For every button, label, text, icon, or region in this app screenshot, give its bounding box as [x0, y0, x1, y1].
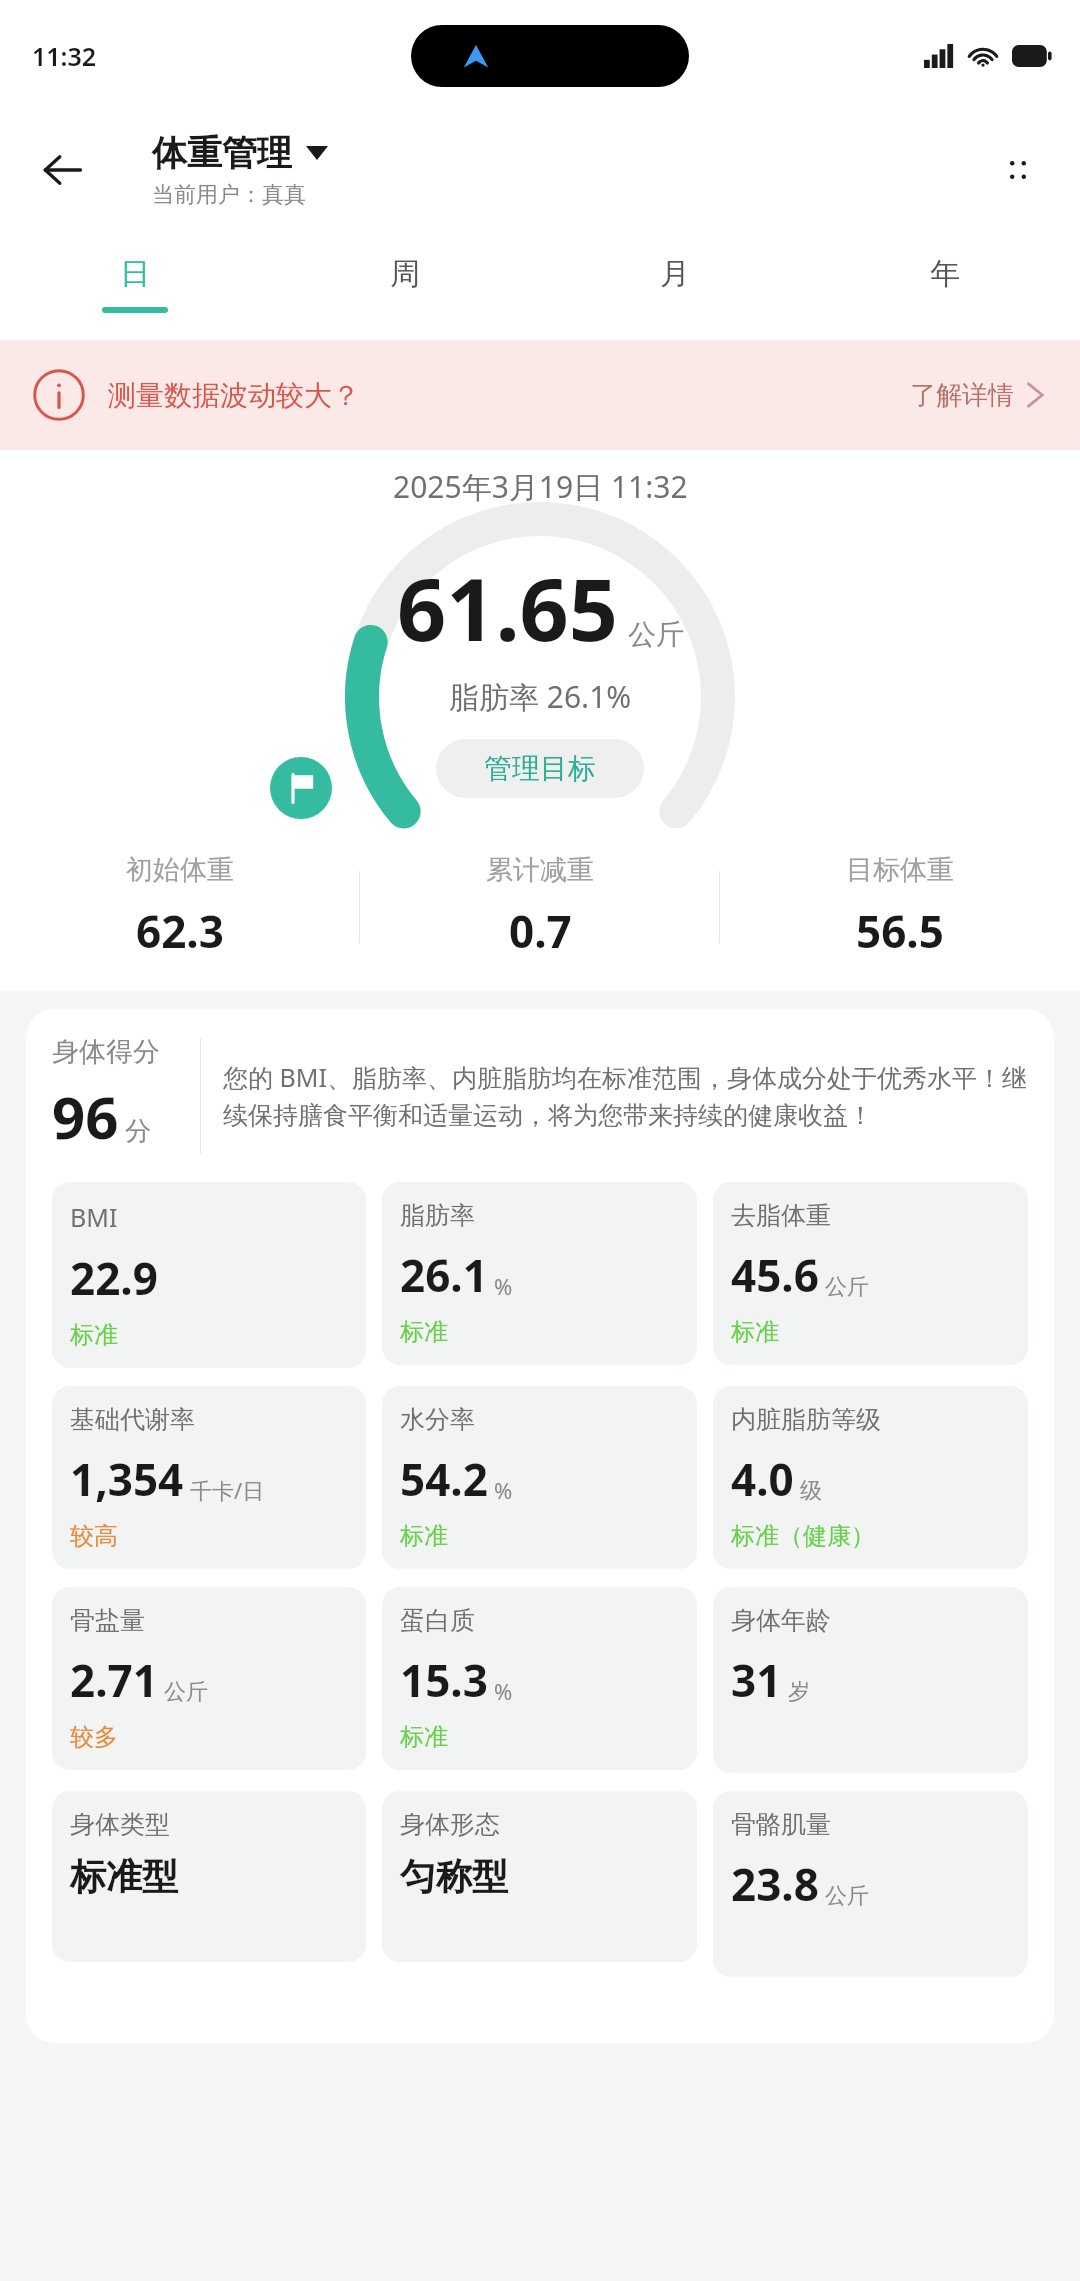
staticText: 初始体重	[126, 853, 234, 887]
button[interactable]: 管理目标	[436, 739, 644, 798]
button[interactable]: 水分率	[382, 1386, 697, 1569]
button[interactable]: 年	[810, 228, 1080, 340]
staticText: 11:32	[32, 39, 97, 73]
staticText: 级	[800, 1477, 822, 1505]
staticText: 较多	[70, 1722, 118, 1752]
staticText: 45.6	[731, 1245, 819, 1305]
staticText: %	[494, 1271, 513, 1301]
staticText: 4.0	[731, 1449, 794, 1509]
staticText: 目标体重	[846, 853, 954, 887]
button[interactable]: 目标体重	[720, 837, 1080, 977]
button[interactable]: BMI	[52, 1182, 366, 1368]
staticText: 2025年3月19日 11:32	[393, 466, 688, 507]
staticText: 标准	[400, 1722, 448, 1752]
staticText: 累计减重	[486, 853, 594, 887]
button[interactable]: 骨骼肌量	[713, 1791, 1028, 1977]
staticText: 较高	[70, 1521, 118, 1551]
staticText: %	[494, 1475, 513, 1505]
staticText: 测量数据波动较大？	[108, 378, 360, 413]
staticText: 周	[390, 255, 420, 293]
staticText: 31	[731, 1650, 782, 1710]
staticText: 基础代谢率	[70, 1404, 195, 1435]
staticText: 标准型	[70, 1854, 178, 1899]
staticText: 标准	[400, 1317, 448, 1347]
staticText: %	[494, 1676, 513, 1706]
staticText: BMI	[70, 1200, 118, 1234]
staticText: 您的 BMI、脂肪率、内脏脂肪均在标准范围，身体成分处于优秀水平！继续保持膳食平…	[223, 1060, 1028, 1132]
staticText: 96	[52, 1077, 119, 1156]
staticText: 年	[930, 255, 960, 293]
staticText: 61.65	[397, 549, 618, 666]
button[interactable]: 月	[540, 228, 810, 340]
staticText: 日	[120, 255, 150, 293]
staticText: 身体年龄	[731, 1605, 831, 1636]
staticText: 23.8	[731, 1854, 819, 1914]
staticText: 脂肪率	[400, 1200, 475, 1231]
staticText: 身体形态	[400, 1809, 500, 1840]
staticText: 标准	[731, 1317, 779, 1347]
button[interactable]: 身体类型	[52, 1791, 366, 1962]
staticText: 匀称型	[400, 1854, 508, 1899]
staticText: 千卡/日	[190, 1475, 265, 1505]
staticText: 岁	[788, 1678, 810, 1706]
button[interactable]: 骨盐量	[52, 1587, 366, 1770]
button[interactable]: 去脂体重	[713, 1182, 1028, 1365]
staticText: 分	[125, 1115, 151, 1148]
staticText: 当前用户：真真	[152, 181, 306, 209]
button[interactable]: 脂肪率	[382, 1182, 697, 1365]
button[interactable]: 测量数据波动较大？	[0, 340, 1080, 450]
staticText: 标准（健康）	[731, 1521, 875, 1551]
button[interactable]: 日	[0, 228, 270, 340]
staticText: 内脏脂肪等级	[731, 1404, 881, 1435]
staticText: 公斤	[164, 1678, 208, 1706]
button[interactable]: 周	[270, 228, 540, 340]
staticText: 管理目标	[484, 751, 596, 786]
staticText: 0.7	[509, 901, 572, 961]
button[interactable]: 内脏脂肪等级	[713, 1386, 1028, 1569]
staticText: 水分率	[400, 1404, 475, 1435]
staticText: 月	[660, 255, 690, 293]
staticText: 62.3	[136, 901, 224, 961]
button[interactable]: 初始体重	[0, 837, 360, 977]
staticText: 蛋白质	[400, 1605, 475, 1636]
staticText: 公斤	[825, 1882, 869, 1910]
staticText: 体重管理	[152, 131, 292, 175]
staticText: 1,354	[70, 1449, 184, 1509]
staticText: 身体类型	[70, 1809, 170, 1840]
staticText: 了解详情	[910, 379, 1014, 412]
staticText: 26.1	[400, 1245, 488, 1305]
button[interactable]: 基础代谢率	[52, 1386, 366, 1569]
staticText: 公斤	[628, 617, 684, 652]
staticText: 脂肪率 26.1%	[449, 676, 632, 717]
button[interactable]: More options	[986, 138, 1050, 202]
button[interactable]: 体重管理	[152, 131, 328, 209]
button[interactable]: 蛋白质	[382, 1587, 697, 1770]
button[interactable]: 身体年龄	[713, 1587, 1028, 1773]
staticText: 骨骼肌量	[731, 1809, 831, 1840]
button[interactable]: 身体形态	[382, 1791, 697, 1962]
button[interactable]: Back	[26, 134, 98, 206]
staticText: 56.5	[856, 901, 944, 961]
staticText: 2.71	[70, 1650, 158, 1710]
staticText: 骨盐量	[70, 1605, 145, 1636]
staticText: 15.3	[400, 1650, 488, 1710]
staticText: 标准	[70, 1320, 118, 1350]
staticText: 去脂体重	[731, 1200, 831, 1231]
button[interactable]: 累计减重	[360, 837, 720, 977]
staticText: 身体得分	[52, 1035, 160, 1069]
staticText: 54.2	[400, 1449, 488, 1509]
staticText: 公斤	[825, 1273, 869, 1301]
staticText: 22.9	[70, 1248, 158, 1308]
staticText: 标准	[400, 1521, 448, 1551]
